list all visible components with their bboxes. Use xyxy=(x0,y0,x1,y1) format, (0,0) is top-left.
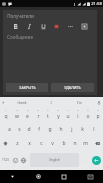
button[interactable]: 4 xyxy=(33,108,43,122)
button[interactable]: Recent apps xyxy=(51,170,77,183)
staticText: j xyxy=(71,126,73,133)
button[interactable]: ?123 xyxy=(0,150,11,170)
button[interactable]: k xyxy=(77,122,88,136)
staticText: I xyxy=(50,100,52,105)
staticText: 2 xyxy=(16,109,18,112)
button[interactable]: I'm xyxy=(65,97,94,108)
button[interactable]: 2 xyxy=(11,108,22,122)
button[interactable]: m xyxy=(80,136,91,150)
staticText: ?123 xyxy=(2,158,9,162)
button[interactable]: z xyxy=(11,136,23,150)
staticText: b xyxy=(62,140,66,147)
staticText: c xyxy=(40,140,43,147)
staticText: p xyxy=(96,113,100,120)
button[interactable]: Emoji xyxy=(11,150,19,170)
button[interactable]: 9 xyxy=(83,108,93,122)
button[interactable]: a xyxy=(4,122,14,136)
staticText: w xyxy=(15,113,19,120)
button[interactable]: h xyxy=(55,122,66,136)
button[interactable]: thank xyxy=(7,97,36,108)
staticText: v xyxy=(51,140,54,147)
staticText: d xyxy=(27,126,31,133)
staticText: z xyxy=(16,140,19,147)
button[interactable]: Underline xyxy=(39,22,48,31)
staticText: Сообщение xyxy=(7,34,33,40)
button[interactable]: g xyxy=(44,122,55,136)
button[interactable]: Change language xyxy=(19,150,28,170)
staticText: Получатели xyxy=(7,13,34,19)
button[interactable]: Получатели xyxy=(3,10,97,21)
staticText: r xyxy=(37,113,40,120)
button[interactable]: 8 xyxy=(73,108,83,122)
staticText: 3 xyxy=(27,109,29,112)
button[interactable]: Expand suggestions xyxy=(0,97,7,108)
button[interactable]: v xyxy=(47,136,58,150)
button[interactable]: 7 xyxy=(63,108,73,122)
staticText: 7 xyxy=(67,109,69,112)
button[interactable]: 1 xyxy=(0,108,11,122)
staticText: ЗАКРЫТЬ xyxy=(19,85,36,90)
staticText: m xyxy=(83,140,88,147)
button[interactable]: Voice input xyxy=(94,97,103,108)
staticText: English xyxy=(49,158,60,162)
staticText: f xyxy=(38,126,40,133)
staticText: l xyxy=(93,126,95,133)
staticText: e xyxy=(26,113,29,120)
button[interactable]: УДАЛИТЬ xyxy=(51,83,94,92)
staticText: k xyxy=(81,126,84,133)
button[interactable]: ЗАКРЫТЬ xyxy=(6,83,48,92)
staticText: o xyxy=(86,113,90,120)
button[interactable]: Backspace xyxy=(91,136,103,150)
staticText: s xyxy=(18,126,21,133)
button[interactable]: Сообщение xyxy=(3,31,97,81)
button[interactable]: 0 xyxy=(93,108,103,122)
staticText: УДАЛИТЬ xyxy=(64,85,81,90)
staticText: q xyxy=(4,113,8,120)
button[interactable]: n xyxy=(69,136,80,150)
button[interactable]: f xyxy=(34,122,44,136)
button[interactable]: d xyxy=(24,122,34,136)
staticText: 4 xyxy=(37,109,39,112)
button[interactable]: Enter xyxy=(91,152,101,168)
button[interactable]: Bold xyxy=(11,22,20,31)
button[interactable]: c xyxy=(35,136,47,150)
button[interactable]: I xyxy=(36,97,65,108)
button[interactable]: 6 xyxy=(53,108,63,122)
staticText: thank xyxy=(17,100,27,105)
staticText: I'm xyxy=(77,100,82,105)
button[interactable]: j xyxy=(66,122,77,136)
staticText: 9 xyxy=(87,109,89,112)
staticText: 1 xyxy=(5,109,7,112)
staticText: u xyxy=(66,113,70,120)
button[interactable]: Home xyxy=(25,170,51,183)
staticText: . xyxy=(84,158,86,163)
staticText: y xyxy=(57,113,60,120)
staticText: h xyxy=(59,126,63,133)
staticText: x xyxy=(28,140,31,147)
button[interactable]: 3 xyxy=(22,108,33,122)
button[interactable]: l xyxy=(88,122,99,136)
staticText: g xyxy=(48,126,52,133)
button[interactable]: 5 xyxy=(43,108,53,122)
button[interactable]: Hide keyboard xyxy=(0,170,25,183)
button[interactable]: b xyxy=(58,136,69,150)
button[interactable]: s xyxy=(14,122,24,136)
staticText: a xyxy=(8,126,11,133)
staticText: t xyxy=(47,113,49,120)
button[interactable]: More formatting xyxy=(66,22,75,31)
staticText: 0 xyxy=(97,109,99,112)
button[interactable]: English xyxy=(30,153,79,167)
staticText: 8 xyxy=(77,109,79,112)
staticText: n xyxy=(73,140,77,147)
button[interactable]: Text color xyxy=(52,22,61,31)
button[interactable]: Italic xyxy=(25,22,34,31)
staticText: i xyxy=(77,113,79,120)
button[interactable]: Shift xyxy=(0,136,11,150)
button[interactable]: Attach xyxy=(80,22,89,31)
staticText: 5 xyxy=(47,109,49,112)
staticText: 6 xyxy=(57,109,59,112)
button[interactable]: Switch keyboard xyxy=(77,170,103,183)
staticText: 21:58 xyxy=(91,1,102,7)
button[interactable]: x xyxy=(23,136,35,150)
